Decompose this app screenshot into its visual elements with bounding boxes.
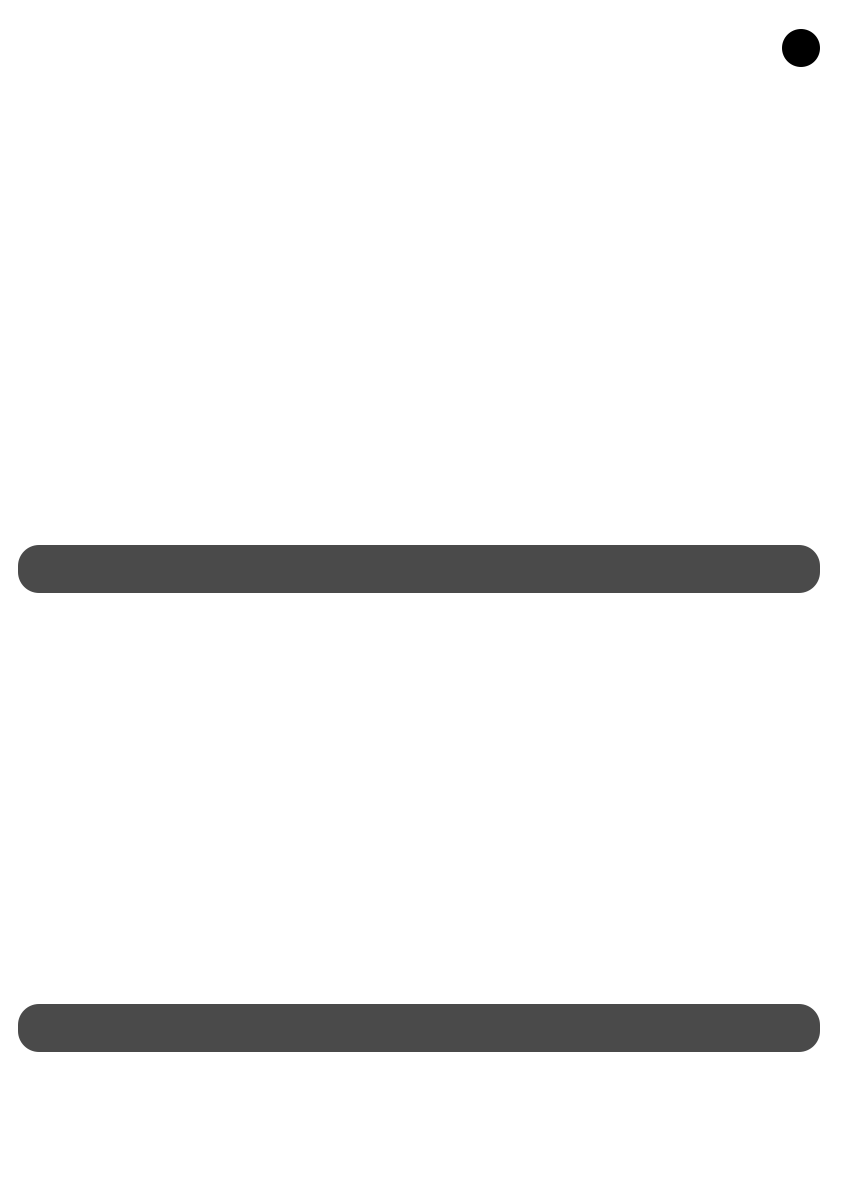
button[interactable]: Primary action [18,545,820,593]
button[interactable]: Profile [782,29,820,67]
button[interactable]: Secondary action [18,1004,820,1052]
